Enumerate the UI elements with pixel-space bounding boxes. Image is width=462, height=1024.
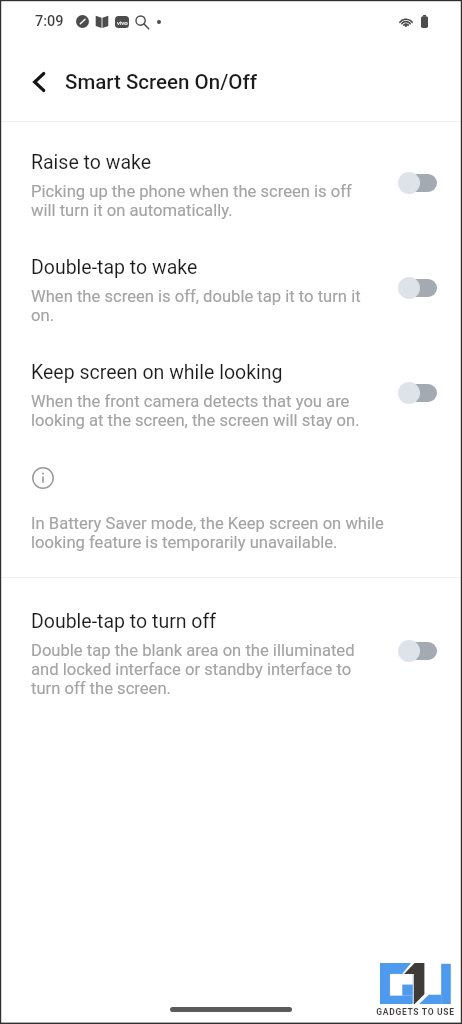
button[interactable]: Back bbox=[22, 65, 56, 99]
staticText: Smart Screen On/Off bbox=[65, 70, 257, 94]
button[interactable]: Double-tap to wake bbox=[0, 256, 462, 325]
button[interactable]: Toggle switch, off bbox=[398, 277, 437, 299]
staticText: In Battery Saver mode, the Keep screen o… bbox=[31, 514, 393, 552]
button[interactable]: Keep screen on while looking bbox=[0, 361, 462, 430]
staticText: GADGETS TO USE bbox=[376, 1007, 455, 1017]
staticText: When the screen is off, double tap it to… bbox=[31, 287, 371, 325]
button[interactable]: Raise to wake bbox=[0, 151, 462, 220]
button[interactable]: Toggle switch, off bbox=[398, 172, 437, 194]
staticText: Double tap the blank area on the illumin… bbox=[31, 641, 371, 698]
staticText: Keep screen on while looking bbox=[31, 361, 283, 384]
button[interactable]: Toggle switch, off bbox=[398, 640, 437, 662]
staticText: Picking up the phone when the screen is … bbox=[31, 182, 371, 220]
staticText: When the front camera detects that you a… bbox=[31, 392, 371, 430]
staticText: Raise to wake bbox=[31, 151, 152, 174]
button[interactable]: Toggle switch, off bbox=[398, 382, 437, 404]
staticText: vivo bbox=[117, 19, 128, 26]
button[interactable]: Double-tap to turn off bbox=[0, 610, 462, 698]
staticText: Double-tap to turn off bbox=[31, 610, 217, 633]
staticText: 7:09 bbox=[35, 13, 64, 30]
staticText: Double-tap to wake bbox=[31, 256, 198, 279]
